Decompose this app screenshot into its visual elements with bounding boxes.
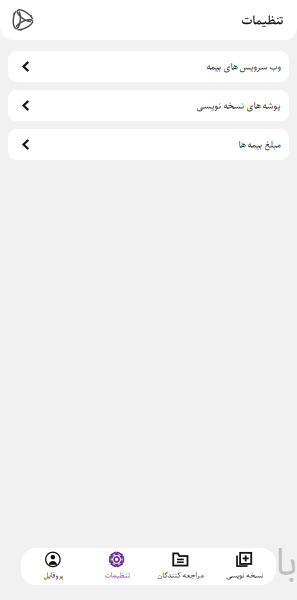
button[interactable]: خانه [0, 0, 33, 41]
staticText: نسخه نویسی [226, 568, 263, 581]
staticText: وب سرویس های بیمه [206, 58, 280, 75]
staticText: مبلغ بیمه ها [238, 136, 280, 153]
button[interactable]: مراجعه کنندگان [148, 548, 212, 585]
staticText: بازار [237, 531, 297, 600]
staticText: مراجعه کنندگان [157, 568, 204, 581]
staticText: پوشه های نسخه نویسی [196, 97, 280, 114]
button[interactable]: پوشه های نسخه نویسی [8, 90, 289, 121]
button[interactable]: تنظیمات [85, 548, 149, 585]
button[interactable]: مبلغ بیمه ها [8, 129, 289, 160]
staticText: تنظیمات [104, 568, 129, 581]
button[interactable]: وب سرویس های بیمه [8, 51, 289, 82]
staticText: پروفایل [43, 568, 63, 581]
button[interactable]: پروفایل [21, 548, 85, 585]
staticText: تنظیمات [241, 9, 283, 31]
button[interactable]: نسخه نویسی [212, 548, 276, 585]
